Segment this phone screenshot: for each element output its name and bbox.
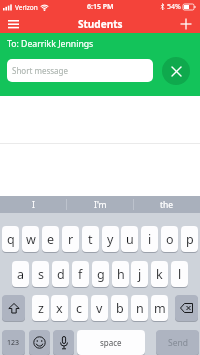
staticText: q [7, 231, 15, 248]
button[interactable]: m [151, 295, 168, 321]
staticText: u [126, 231, 134, 248]
button[interactable]: u [121, 226, 138, 252]
button[interactable]: I [0, 196, 66, 213]
staticText: Send [168, 337, 188, 349]
staticText: l [178, 266, 182, 283]
staticText: To: Dearrikk Jennings [7, 38, 94, 50]
staticText: 123 [7, 338, 20, 348]
button[interactable]: n [131, 295, 148, 321]
staticText: Students [78, 17, 123, 31]
staticText: b [116, 300, 124, 317]
button[interactable]: s [32, 261, 49, 287]
button[interactable]: 123 [2, 330, 25, 355]
button[interactable]: space [77, 330, 145, 355]
button[interactable]: e [42, 226, 59, 252]
button[interactable]: r [62, 226, 79, 252]
staticText: Short message [12, 65, 69, 76]
staticText: v [96, 300, 103, 317]
staticText: 54% [167, 2, 181, 12]
button[interactable]: k [151, 261, 168, 287]
button[interactable]: p [181, 226, 198, 252]
staticText: n [136, 300, 144, 317]
button[interactable]: j [131, 261, 148, 287]
button[interactable]: y [102, 226, 119, 252]
button[interactable]: o [161, 226, 178, 252]
staticText: p [186, 231, 194, 248]
staticText: j [138, 266, 142, 283]
staticText: i [148, 231, 152, 248]
button[interactable]: d [52, 261, 69, 287]
button[interactable]: Short message [7, 59, 153, 82]
staticText: space [100, 337, 122, 348]
staticText: f [78, 266, 83, 283]
button[interactable] [2, 295, 25, 321]
staticText: z [38, 300, 44, 317]
button[interactable] [29, 330, 50, 355]
button[interactable] [5, 16, 21, 32]
button[interactable]: the [134, 196, 200, 213]
button[interactable]: I'm [67, 196, 133, 213]
button[interactable]: z [32, 295, 49, 321]
button[interactable]: i [141, 226, 158, 252]
button[interactable] [175, 295, 198, 321]
button[interactable] [178, 16, 194, 32]
staticText: k [156, 266, 163, 283]
staticText: h [117, 266, 125, 283]
button[interactable]: c [71, 295, 88, 321]
button[interactable]: Send [156, 330, 199, 355]
staticText: c [76, 300, 83, 317]
staticText: d [57, 266, 65, 283]
button[interactable]: w [22, 226, 39, 252]
button[interactable] [53, 330, 74, 355]
staticText: the [160, 199, 174, 211]
button[interactable]: h [112, 261, 129, 287]
button[interactable] [162, 57, 190, 85]
staticText: x [56, 300, 63, 317]
button[interactable]: g [92, 261, 109, 287]
staticText: a [17, 266, 25, 283]
button[interactable]: v [91, 295, 108, 321]
staticText: Verizon [15, 3, 38, 12]
button[interactable]: x [51, 295, 68, 321]
staticText: I [32, 199, 35, 211]
staticText: t [88, 231, 93, 248]
staticText: m [154, 300, 166, 317]
staticText: y [107, 231, 114, 248]
staticText: r [68, 231, 74, 248]
staticText: o [166, 231, 174, 248]
button[interactable]: l [171, 261, 188, 287]
button[interactable]: a [12, 261, 29, 287]
button[interactable]: q [2, 226, 19, 252]
staticText: I'm [94, 199, 107, 211]
staticText: w [26, 231, 36, 248]
staticText: 6:15 PM [87, 2, 114, 12]
staticText: g [97, 266, 105, 283]
button[interactable]: t [82, 226, 99, 252]
staticText: s [38, 266, 44, 283]
button[interactable]: b [111, 295, 128, 321]
staticText: e [47, 231, 55, 248]
button[interactable]: f [72, 261, 89, 287]
